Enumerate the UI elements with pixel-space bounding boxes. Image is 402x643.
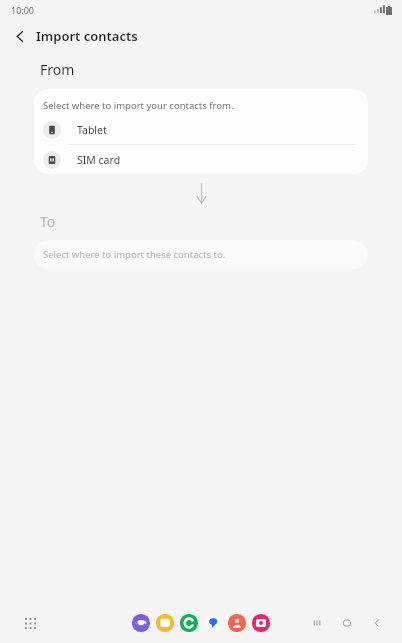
button[interactable]: Select where to import these contacts to… [34, 240, 368, 269]
button[interactable]: App [132, 614, 150, 632]
staticText: Import contacts [36, 27, 138, 45]
button[interactable]: Home [336, 612, 358, 634]
button[interactable]: Tablet [34, 115, 368, 144]
button[interactable]: App [180, 614, 198, 632]
button[interactable]: App [228, 614, 246, 632]
button[interactable]: Back [366, 612, 388, 634]
button[interactable]: Back [4, 20, 36, 52]
staticText: Select where to import your contacts fro… [43, 99, 234, 112]
button[interactable]: App [252, 614, 270, 632]
button[interactable]: App [156, 614, 174, 632]
staticText: SIM card [77, 153, 121, 167]
button[interactable]: SIM card [34, 145, 368, 174]
staticText: From [40, 60, 75, 79]
button[interactable]: App [204, 614, 222, 632]
staticText: 10:00 [11, 4, 35, 16]
staticText: To [40, 212, 56, 231]
button[interactable]: Recent apps [306, 612, 328, 634]
staticText: Select where to import these contacts to… [43, 248, 226, 261]
staticText: Tablet [77, 123, 107, 137]
button[interactable]: Apps [19, 612, 41, 634]
